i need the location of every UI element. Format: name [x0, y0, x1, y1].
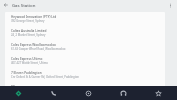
- button[interactable]: 7 Eleven Paddington: [5, 68, 165, 82]
- staticText: Heywood Innovation (PTY) Ltd: [11, 15, 57, 19]
- button[interactable]: Caltex Australia Limited: [5, 26, 165, 40]
- button[interactable]: Favourites: [142, 86, 175, 100]
- staticText: BP: [11, 85, 15, 86]
- button[interactable]: Heywood Innovation (PTY) Ltd: [5, 12, 165, 26]
- staticText: 24, 2 Market Street, Sydney: [11, 33, 46, 37]
- button[interactable]: Calls: [37, 86, 70, 100]
- button[interactable]: Headset: [107, 86, 140, 100]
- staticText: Coles Express Ultimo: [11, 57, 43, 61]
- button[interactable]: Back: [0, 0, 12, 10]
- staticText: Coles Express Woolloomooloo: [11, 43, 57, 47]
- button[interactable]: Coles Express Ultimo: [5, 54, 165, 68]
- staticText: 407-427 Wattle Street, Ultimo: [11, 61, 48, 65]
- staticText: 392 George Street, Sydney: [11, 19, 45, 23]
- staticText: Cnr Oxford St & Gurner Rd, Oxford Street…: [11, 75, 80, 79]
- button[interactable]: BP: [11, 85, 165, 86]
- button[interactable]: Coles Express Woolloomooloo: [5, 40, 165, 54]
- button[interactable]: Home: [2, 86, 35, 100]
- staticText: 7 Eleven Paddington: [11, 71, 42, 75]
- button[interactable]: Record: [72, 86, 105, 100]
- staticText: Caltex Australia Limited: [11, 29, 47, 33]
- staticText: 61-63 Cowper Wharf Road, Woolloomooloo: [11, 47, 66, 51]
- staticText: Gas Station: [12, 2, 36, 8]
- button[interactable]: More options: [164, 0, 177, 10]
